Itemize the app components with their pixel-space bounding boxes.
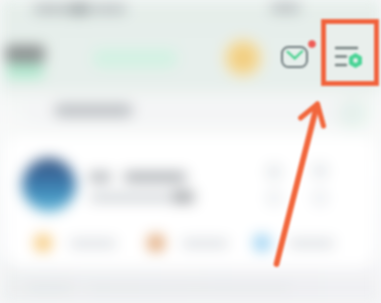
button[interactable]: Create new list xyxy=(317,15,381,90)
button[interactable]: Inbox, 1 unread message xyxy=(278,38,318,74)
